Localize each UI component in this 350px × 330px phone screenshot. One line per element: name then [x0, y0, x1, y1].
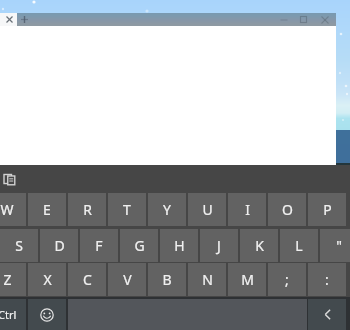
- button[interactable]: E: [28, 193, 66, 226]
- button[interactable]: N: [188, 263, 226, 296]
- button[interactable]: L: [280, 229, 318, 262]
- button[interactable]: J: [200, 229, 238, 262]
- staticText: G: [134, 236, 145, 255]
- button[interactable]: ;: [268, 263, 306, 296]
- staticText: Y: [163, 200, 171, 219]
- button[interactable]: Z: [0, 263, 26, 296]
- button[interactable]: M: [228, 263, 266, 296]
- button[interactable]: V: [108, 263, 146, 296]
- staticText: Z: [3, 270, 12, 289]
- staticText: N: [202, 270, 213, 289]
- staticText: ": [336, 236, 342, 255]
- button[interactable]: T: [108, 193, 146, 226]
- staticText: U: [202, 200, 213, 219]
- button[interactable]: Close: [313, 13, 336, 26]
- button[interactable]: Left arrow: [308, 299, 346, 330]
- staticText: K: [255, 236, 264, 255]
- staticText: S: [15, 236, 23, 255]
- staticText: V: [123, 270, 132, 289]
- staticText: R: [83, 200, 92, 219]
- staticText: M: [241, 270, 254, 289]
- staticText: H: [174, 236, 185, 255]
- staticText: J: [217, 236, 221, 255]
- button[interactable]: F: [80, 229, 118, 262]
- button[interactable]: Emoji: [28, 299, 66, 330]
- button[interactable]: X: [28, 263, 66, 296]
- staticText: :: [325, 270, 329, 289]
- staticText: O: [282, 200, 293, 219]
- button[interactable]: Maximize: [294, 13, 313, 26]
- button[interactable]: G: [120, 229, 158, 262]
- staticText: L: [295, 236, 303, 255]
- button[interactable]: O: [268, 193, 306, 226]
- button[interactable]: H: [160, 229, 198, 262]
- button[interactable]: D: [40, 229, 78, 262]
- button[interactable]: New tab: [17, 13, 32, 26]
- staticText: F: [95, 236, 103, 255]
- staticText: W: [0, 200, 14, 219]
- button[interactable]: P: [308, 193, 346, 226]
- button[interactable]: I: [228, 193, 266, 226]
- staticText: C: [83, 270, 92, 289]
- button[interactable]: ": [320, 229, 350, 262]
- button[interactable]: Ctrl: [0, 299, 26, 330]
- staticText: T: [123, 200, 131, 219]
- button[interactable]: C: [68, 263, 106, 296]
- staticText: P: [323, 200, 332, 219]
- button[interactable]: S: [0, 229, 38, 262]
- staticText: X: [43, 270, 52, 289]
- staticText: B: [162, 270, 172, 289]
- staticText: D: [54, 236, 65, 255]
- button[interactable]: U: [188, 193, 226, 226]
- button[interactable]: B: [148, 263, 186, 296]
- button[interactable]: :: [308, 263, 346, 296]
- staticText: ;: [285, 270, 289, 289]
- button[interactable]: R: [68, 193, 106, 226]
- staticText: Ctrl: [0, 307, 17, 322]
- button[interactable]: Tab: [0, 13, 17, 26]
- staticText: E: [43, 200, 51, 219]
- button[interactable]: K: [240, 229, 278, 262]
- button[interactable]: Minimize: [273, 13, 294, 26]
- button[interactable]: Y: [148, 193, 186, 226]
- staticText: I: [245, 200, 250, 219]
- button[interactable]: W: [0, 193, 26, 226]
- button[interactable]: Clipboard: [0, 170, 18, 188]
